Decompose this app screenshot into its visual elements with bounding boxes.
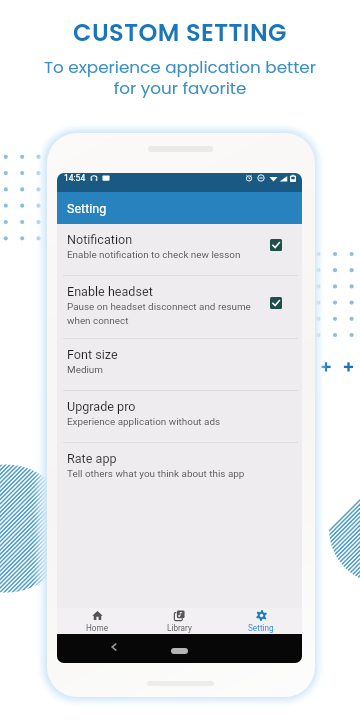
button[interactable]: Setting <box>220 608 302 634</box>
button[interactable]: Home <box>57 608 138 634</box>
button[interactable]: Upgrade pro <box>57 391 302 443</box>
button[interactable]: Enable headset <box>57 276 302 339</box>
staticText: Experience application without ads <box>67 416 221 428</box>
staticText: Medium <box>67 364 103 376</box>
button[interactable]: Font size <box>57 339 302 391</box>
staticText: Enable notification to check new lesson <box>67 249 241 261</box>
button[interactable]: Notification <box>57 224 302 276</box>
staticText: 14:54 <box>64 173 86 183</box>
staticText: Enable headset <box>67 284 153 299</box>
staticText: Font size <box>67 347 118 362</box>
button[interactable]: Library <box>138 608 220 634</box>
staticText: Setting <box>67 201 107 216</box>
button[interactable]: Rate app <box>57 443 302 495</box>
staticText: Pause on headset disconnect and resume w… <box>67 301 251 326</box>
staticText: Tell others what you think about this ap… <box>67 468 245 480</box>
staticText: Home <box>86 623 109 633</box>
staticText: Setting <box>248 623 274 633</box>
staticText: Library <box>167 623 192 633</box>
staticText: Upgrade pro <box>67 399 136 414</box>
staticText: Rate app <box>67 451 117 466</box>
staticText: Notification <box>67 232 133 247</box>
button[interactable]: Back <box>99 634 129 663</box>
button[interactable]: Setting <box>57 192 302 224</box>
staticText: To experience application better for you… <box>44 55 316 100</box>
staticText: CUSTOM SETTING <box>73 16 287 50</box>
button[interactable]: Home <box>171 648 188 654</box>
